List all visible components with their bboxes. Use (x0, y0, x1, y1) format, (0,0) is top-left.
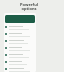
button[interactable]: Feature (4, 46, 36, 53)
button[interactable] (5, 15, 35, 23)
button[interactable]: Feature (4, 67, 36, 72)
button[interactable]: Feature (4, 53, 36, 60)
staticText: Powerful options (0, 2, 61, 11)
button[interactable]: Feature (4, 39, 36, 46)
button[interactable]: Feature (4, 25, 36, 32)
button[interactable]: Feature (4, 60, 36, 67)
button[interactable]: Feature (4, 32, 36, 39)
